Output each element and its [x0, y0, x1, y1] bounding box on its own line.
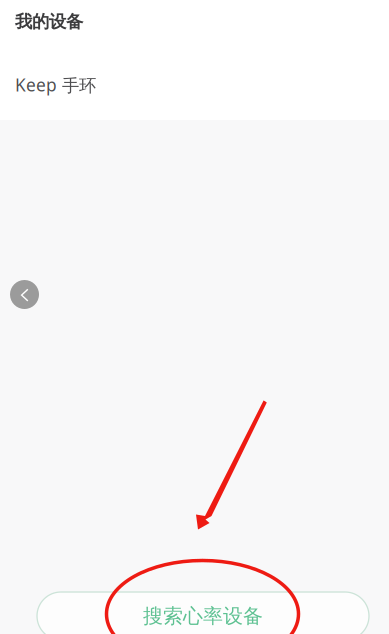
staticText: 搜索心率设备	[143, 604, 263, 628]
button[interactable]: Back	[10, 280, 39, 309]
button[interactable]: 搜索心率设备	[37, 592, 369, 634]
staticText: 我的设备	[15, 11, 83, 32]
staticText: Keep 手环	[15, 73, 96, 96]
